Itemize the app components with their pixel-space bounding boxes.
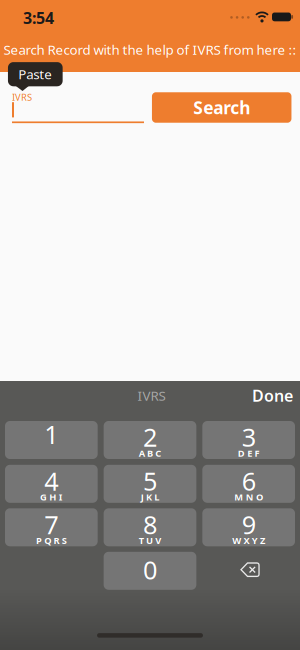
staticText: JKL bbox=[141, 491, 159, 503]
staticText: Search bbox=[193, 96, 250, 119]
button[interactable]: 7 bbox=[5, 508, 98, 546]
staticText: 3 bbox=[242, 420, 256, 454]
staticText: Done bbox=[252, 385, 293, 406]
staticText: Search Record with the help of IVRS from… bbox=[3, 41, 296, 58]
button[interactable]: 0 bbox=[104, 552, 196, 590]
staticText: DEF bbox=[238, 447, 259, 459]
staticText: WXYZ bbox=[232, 534, 265, 547]
staticText: 2 bbox=[143, 420, 157, 454]
button[interactable]: 5 bbox=[104, 465, 196, 503]
button[interactable]: IVRS bbox=[12, 92, 148, 125]
staticText: TUV bbox=[139, 534, 161, 547]
staticText: 6 bbox=[242, 464, 256, 498]
staticText: GHI bbox=[40, 491, 63, 503]
staticText: MNO bbox=[234, 491, 263, 503]
staticText: PQRS bbox=[36, 534, 67, 547]
button[interactable]: 2 bbox=[104, 421, 196, 459]
staticText: Paste bbox=[18, 65, 52, 83]
staticText: 3:54 bbox=[23, 7, 54, 28]
staticText: 0 bbox=[143, 553, 157, 586]
staticText: 8 bbox=[143, 507, 157, 541]
button[interactable]: Delete bbox=[202, 552, 295, 590]
staticText: IVRS bbox=[137, 387, 165, 404]
button[interactable]: Search bbox=[152, 92, 291, 123]
button[interactable]: 1 bbox=[5, 421, 98, 459]
button[interactable]: 3 bbox=[202, 421, 295, 459]
button[interactable]: Paste bbox=[8, 62, 63, 86]
button[interactable]: 9 bbox=[202, 508, 295, 546]
staticText: ABC bbox=[139, 447, 161, 459]
staticText: 9 bbox=[242, 507, 256, 541]
button[interactable]: Done bbox=[246, 380, 298, 410]
staticText: 1 bbox=[44, 417, 58, 451]
button[interactable]: 4 bbox=[5, 465, 98, 503]
staticText: IVRS bbox=[12, 91, 32, 103]
button[interactable]: 6 bbox=[202, 465, 295, 503]
staticText: 5 bbox=[143, 464, 157, 498]
staticText: 4 bbox=[44, 464, 58, 498]
button[interactable]: 8 bbox=[104, 508, 196, 546]
staticText: 7 bbox=[44, 507, 58, 541]
